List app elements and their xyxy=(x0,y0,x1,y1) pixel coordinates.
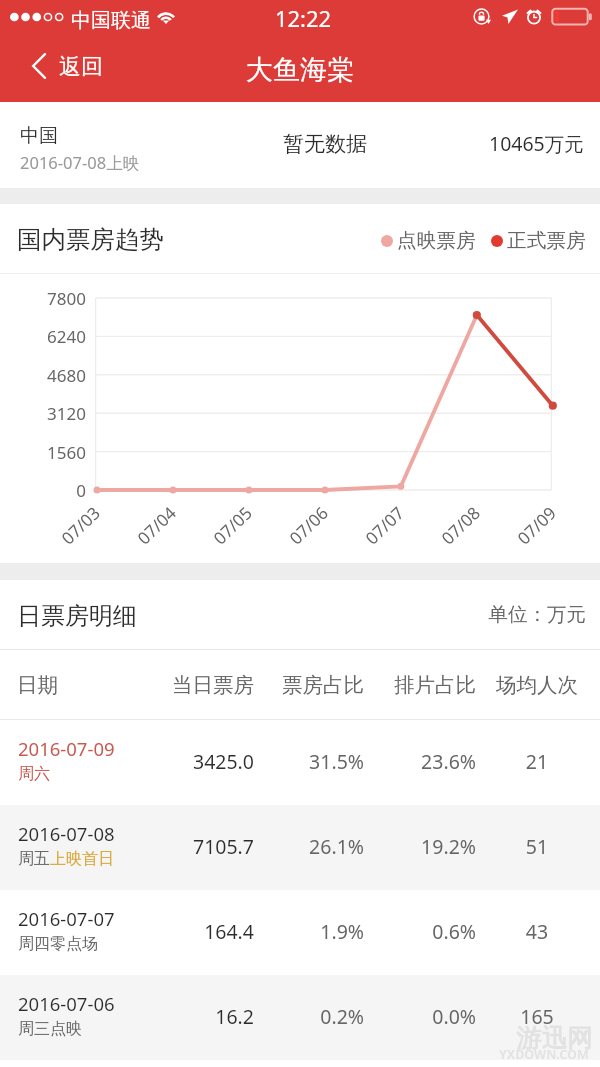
staticText: 31.5% xyxy=(244,748,364,775)
staticText: 返回 xyxy=(59,53,103,81)
staticText: 07/06 xyxy=(284,501,333,550)
staticText: 中国 xyxy=(20,124,58,148)
staticText: 国内票房趋势 xyxy=(17,224,164,255)
staticText: 日票房明细 xyxy=(17,601,137,631)
staticText: 164.4 xyxy=(132,918,254,945)
staticText: 周三点映 xyxy=(18,1019,82,1039)
button[interactable]: 2016-07-09 xyxy=(0,720,600,805)
staticText: 07/03 xyxy=(56,501,105,550)
staticText: 12:22 xyxy=(3,3,600,33)
staticText: 点映票房 xyxy=(397,228,476,253)
staticText: 暂无数据 xyxy=(283,131,367,157)
staticText: 排片占比 xyxy=(356,672,476,698)
staticText: 2016-07-06 xyxy=(18,991,115,1016)
staticText: 0 xyxy=(0,479,86,502)
staticText: 2016-07-08上映 xyxy=(20,151,140,174)
staticText: 周五 xyxy=(18,849,50,869)
staticText: 7105.7 xyxy=(132,833,254,860)
staticText: 2016-07-09 xyxy=(18,736,115,761)
button[interactable]: 2016-07-08 xyxy=(0,805,600,890)
staticText: 2016-07-07 xyxy=(18,906,115,931)
staticText: 2016-07-08 xyxy=(18,821,115,846)
staticText: 周六 xyxy=(18,764,50,784)
staticText: 0.6% xyxy=(356,918,476,945)
staticText: 16.2 xyxy=(132,1003,254,1030)
staticText: 4680 xyxy=(0,364,86,387)
staticText: 大鱼海棠 xyxy=(0,53,600,87)
staticText: 周四零点场 xyxy=(18,934,98,954)
staticText: 正式票房 xyxy=(507,228,586,253)
staticText: 43 xyxy=(477,918,597,945)
staticText: 07/07 xyxy=(360,501,409,550)
staticText: 07/04 xyxy=(132,501,181,550)
staticText: 3425.0 xyxy=(132,748,254,775)
staticText: 场均人次 xyxy=(477,672,597,698)
staticText: 3120 xyxy=(0,402,86,425)
staticText: 上映首日 xyxy=(50,849,114,869)
staticText: 26.1% xyxy=(244,833,364,860)
staticText: 21 xyxy=(477,748,597,775)
staticText: 当日票房 xyxy=(132,672,254,698)
staticText: 07/05 xyxy=(208,501,257,550)
staticText: 0.2% xyxy=(244,1003,364,1030)
staticText: 0.0% xyxy=(356,1003,476,1030)
staticText: 单位：万元 xyxy=(0,602,586,627)
staticText: 日期 xyxy=(17,672,58,698)
staticText: 23.6% xyxy=(356,748,476,775)
staticText: 6240 xyxy=(0,325,86,348)
staticText: 10465万元 xyxy=(489,130,584,157)
staticText: 1.9% xyxy=(244,918,364,945)
button[interactable]: 2016-07-06 xyxy=(0,975,600,1060)
staticText: 票房占比 xyxy=(244,672,364,698)
staticText: 1560 xyxy=(0,441,86,464)
staticText: 165 xyxy=(477,1003,597,1030)
staticText: 游迅网 xyxy=(516,1022,593,1054)
staticText: 07/09 xyxy=(512,501,561,550)
button[interactable]: 返回 xyxy=(32,53,103,81)
staticText: YXDOWN.COM xyxy=(499,1046,589,1063)
staticText: 7800 xyxy=(0,287,86,310)
staticText: 中国联通 xyxy=(71,8,151,33)
staticText: 07/08 xyxy=(436,501,485,550)
staticText: 51 xyxy=(477,833,597,860)
staticText: 19.2% xyxy=(356,833,476,860)
button[interactable]: 2016-07-07 xyxy=(0,890,600,975)
